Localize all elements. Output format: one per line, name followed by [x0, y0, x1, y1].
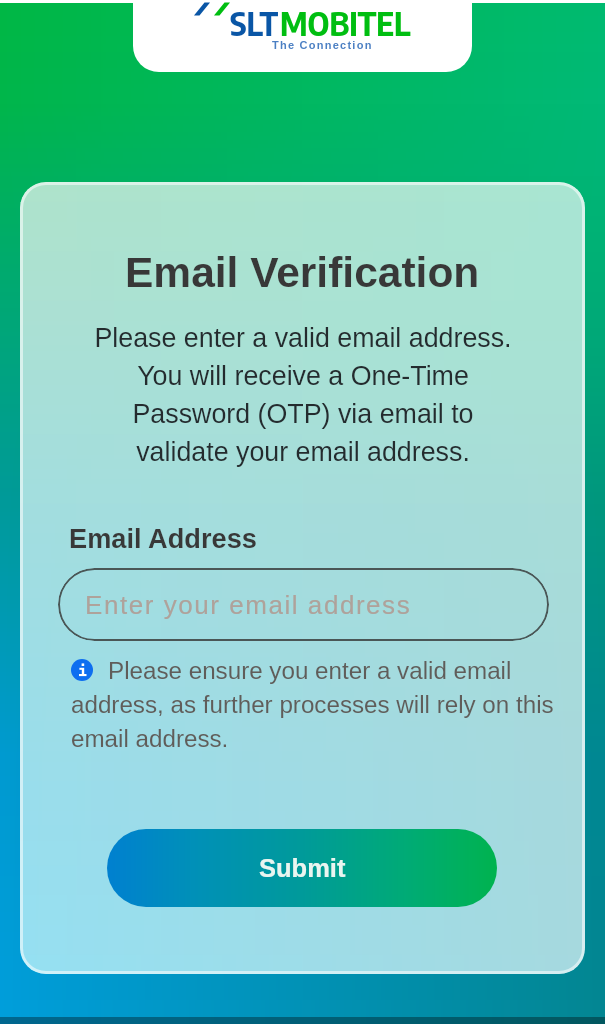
staticText: Enter your email address — [85, 590, 412, 619]
staticText: Please enter a valid email address. You … — [94, 323, 512, 467]
staticText: MOBITEL — [280, 2, 411, 43]
button[interactable]: Submit — [107, 829, 497, 907]
button[interactable]: Enter your email address — [58, 568, 549, 641]
staticText: SLT — [230, 2, 279, 43]
staticText: Email Address — [69, 523, 257, 553]
staticText: Please ensure you enter a valid email ad… — [71, 657, 563, 752]
button[interactable]: SLT Mobitel — [133, 0, 472, 72]
other: Information — [71, 659, 93, 681]
staticText: Email Verification — [125, 249, 480, 296]
staticText: Submit — [259, 854, 346, 882]
staticText: The Connection — [272, 39, 373, 51]
